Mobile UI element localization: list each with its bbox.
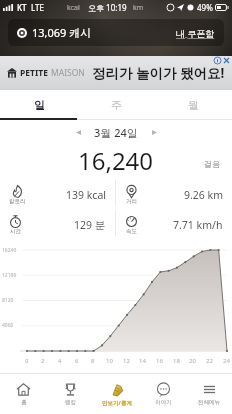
staticText: 만보기/통계: [102, 399, 132, 407]
button[interactable]: 랭킹: [47, 374, 94, 414]
button[interactable]: 주: [78, 90, 155, 120]
staticText: 3월 24일: [94, 125, 138, 140]
staticText: 거리: [126, 198, 137, 205]
staticText: 13,069 캐시: [32, 25, 92, 40]
staticText: 6: [75, 357, 79, 365]
button[interactable]: 시간: [0, 210, 115, 240]
staticText: 칼로리: [9, 198, 26, 205]
staticText: 걸음: [204, 159, 220, 169]
staticText: 8: [91, 357, 95, 365]
staticText: 16: [156, 357, 163, 365]
staticText: 18: [173, 357, 180, 365]
button[interactable]: 거리: [116, 180, 232, 210]
staticText: 8120: [2, 297, 14, 304]
staticText: 14: [139, 357, 146, 365]
staticText: km: [133, 3, 144, 13]
staticText: LTE: [31, 2, 44, 13]
staticText: 이야기: [155, 399, 172, 406]
staticText: 전체메뉴: [198, 399, 220, 406]
staticText: 16240: [2, 247, 17, 254]
staticText: 정리가 놀이가 됐어요!: [92, 64, 225, 82]
button[interactable]: 속도: [116, 210, 232, 240]
staticText: 20: [189, 357, 196, 365]
staticText: 4: [58, 357, 62, 365]
staticText: 10: [106, 357, 113, 365]
staticText: 139 kcal: [66, 188, 106, 202]
staticText: 12180: [2, 272, 17, 279]
staticText: KT: [17, 2, 27, 13]
button[interactable]: 칼로리: [0, 180, 115, 210]
button[interactable]: 월: [155, 90, 232, 120]
staticText: 월: [188, 98, 199, 112]
staticText: 홈: [21, 399, 27, 406]
button[interactable]: 일: [0, 90, 78, 120]
staticText: 시간: [10, 228, 21, 235]
staticText: 24: [223, 357, 230, 365]
button[interactable]: 이야기: [140, 374, 186, 414]
staticText: 0: [25, 357, 29, 365]
staticText: 49%: [197, 2, 213, 13]
staticText: 12: [123, 357, 130, 365]
staticText: 7.71 km/h: [173, 218, 223, 232]
staticText: PETITE: [20, 67, 48, 79]
staticText: 4060: [2, 322, 14, 329]
staticText: 랭킹: [65, 399, 76, 406]
other: Ad choices: [214, 57, 221, 64]
staticText: 16,240: [78, 144, 154, 174]
staticText: 일: [34, 98, 45, 112]
staticText: 22: [206, 357, 213, 365]
button[interactable]: 전체메뉴: [186, 374, 232, 414]
staticText: 2: [41, 357, 45, 365]
staticText: MAISON: [51, 67, 85, 79]
staticText: 주: [111, 98, 122, 112]
staticText: 129 분: [74, 218, 106, 232]
staticText: 내 쿠폰함: [176, 27, 215, 39]
other: Close ad: [223, 57, 230, 64]
button[interactable]: Previous day: [68, 122, 88, 142]
staticText: 속도: [126, 228, 137, 235]
staticText: 9.26 km: [184, 188, 223, 202]
staticText: kcal: [67, 3, 80, 13]
staticText: 오후 10:19: [88, 2, 127, 13]
button[interactable]: 만보기/통계: [94, 374, 140, 414]
button[interactable]: Next day: [144, 122, 164, 142]
button[interactable]: 홈: [0, 374, 47, 414]
button[interactable]: 13,069 캐시: [8, 19, 224, 46]
button[interactable]: PETITE: [0, 56, 232, 90]
